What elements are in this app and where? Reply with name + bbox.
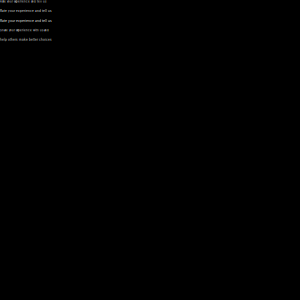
staticText: help others make better choices: [0, 38, 52, 41]
staticText: Rate your experience and tell us: [0, 9, 52, 13]
staticText: Rate your experience and tell us: [0, 0, 46, 3]
staticText: Share your experience with us and: [0, 29, 49, 32]
staticText: Rate your experience and tell us: [0, 19, 52, 23]
